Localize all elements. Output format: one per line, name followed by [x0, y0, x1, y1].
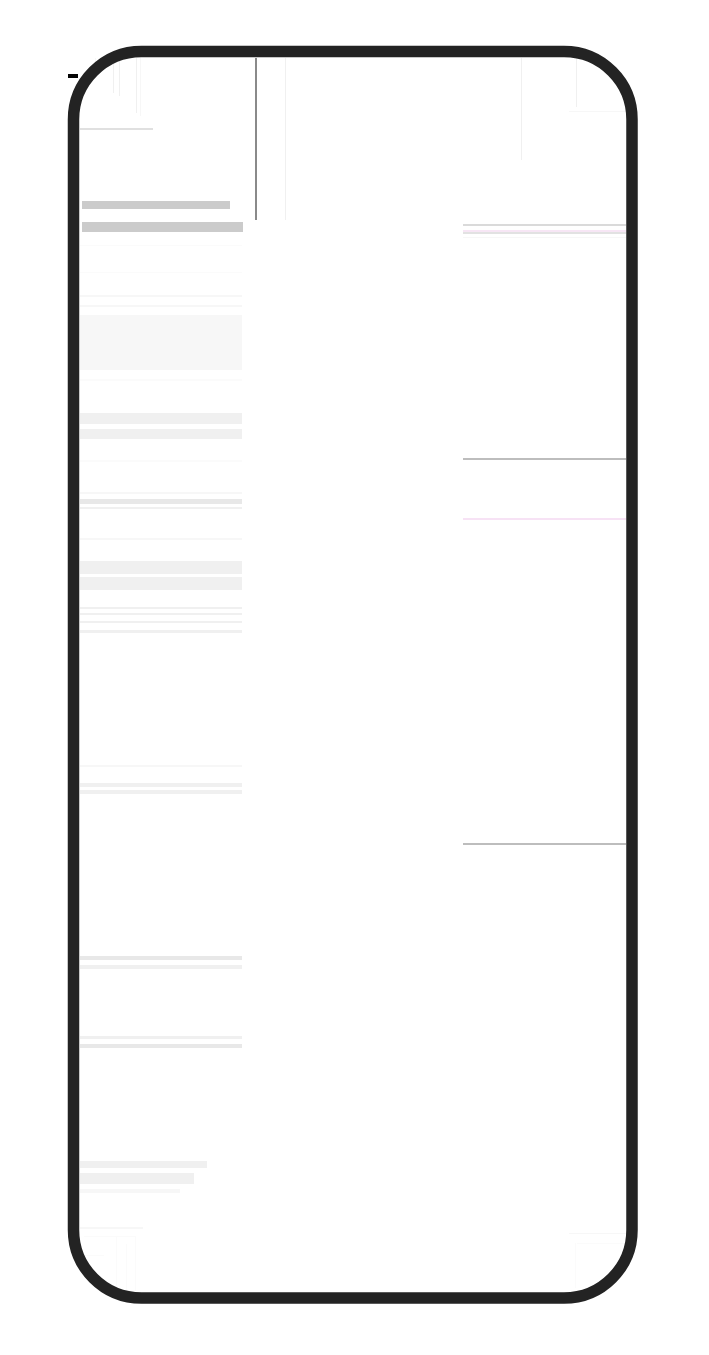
- button[interactable]: Section five: [80, 756, 626, 804]
- button[interactable]: Section seven: [80, 1028, 626, 1060]
- button[interactable]: Detail two: [463, 450, 626, 470]
- button[interactable]: Detail three: [463, 510, 626, 530]
- button[interactable]: Section four: [80, 552, 626, 644]
- button[interactable]: More options: [566, 62, 614, 110]
- button[interactable]: Detail four: [463, 835, 626, 855]
- button[interactable]: Detail one: [463, 218, 626, 244]
- button[interactable]: Section six: [80, 948, 626, 980]
- button[interactable]: Section eight: [80, 1154, 626, 1206]
- button[interactable]: Navigate up: [80, 62, 126, 108]
- button[interactable]: Section three: [80, 486, 626, 544]
- button[interactable]: Headline: [80, 196, 626, 240]
- button[interactable]: Section two: [80, 404, 626, 466]
